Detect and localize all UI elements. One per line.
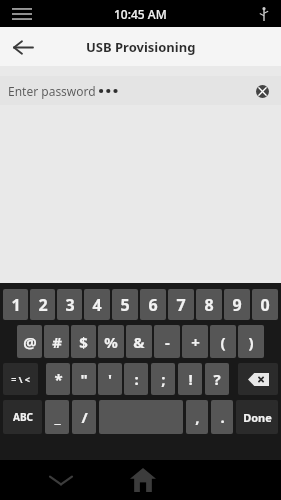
staticText: 7	[176, 294, 186, 316]
staticText: &	[133, 332, 145, 352]
button[interactable]: )	[238, 325, 264, 358]
button[interactable]: +	[182, 325, 208, 358]
staticText: $	[79, 332, 88, 352]
staticText: )	[248, 332, 254, 352]
staticText: !	[188, 369, 193, 389]
staticText: 8	[204, 294, 214, 316]
staticText: ,	[195, 407, 200, 427]
button[interactable]: 8	[196, 289, 222, 320]
button[interactable]: Hide keyboard	[45, 464, 77, 496]
staticText: ;	[161, 369, 166, 389]
staticText: @	[23, 332, 37, 352]
staticText: USB Provisioning	[86, 38, 196, 56]
staticText: 1	[11, 294, 21, 316]
staticText: ABC	[13, 410, 33, 424]
button[interactable]: 0	[252, 289, 278, 320]
button[interactable]: Enter password	[0, 76, 281, 105]
staticText: 4	[92, 294, 102, 316]
staticText: "	[80, 369, 88, 389]
staticText: Done	[243, 410, 272, 425]
button[interactable]: "	[72, 363, 96, 395]
button[interactable]: (	[210, 325, 236, 358]
button[interactable]: '	[98, 363, 122, 395]
staticText: 5	[120, 294, 130, 316]
button[interactable]: 7	[168, 289, 194, 320]
button[interactable]: Home	[125, 462, 161, 498]
button[interactable]: @	[17, 325, 42, 358]
button[interactable]: 2	[30, 289, 55, 320]
button[interactable]: Backspace	[238, 363, 278, 395]
staticText: :	[134, 369, 139, 389]
button[interactable]: %	[98, 325, 124, 358]
staticText: (	[220, 332, 226, 352]
button[interactable]: 5	[112, 289, 138, 320]
button[interactable]: _	[45, 400, 69, 434]
button[interactable]: ?	[205, 363, 229, 395]
staticText: _	[54, 407, 61, 427]
button[interactable]: -	[154, 325, 180, 358]
button[interactable]: $	[71, 325, 96, 358]
staticText: %	[104, 332, 118, 352]
button[interactable]: :	[124, 363, 148, 395]
button[interactable]: Done	[236, 400, 278, 434]
staticText: Enter password	[8, 83, 96, 99]
button[interactable]: 1	[3, 289, 28, 320]
button[interactable]: ,	[186, 400, 208, 434]
staticText: 0	[260, 294, 270, 316]
staticText: *	[54, 369, 63, 389]
other: Backspace	[238, 363, 278, 395]
button[interactable]: ;	[151, 363, 175, 395]
button[interactable]: Menu	[8, 0, 36, 27]
button[interactable]: /	[72, 400, 96, 434]
button[interactable]: 4	[84, 289, 110, 320]
staticText: = \ <	[11, 373, 30, 385]
staticText: 9	[232, 294, 242, 316]
button[interactable]: 3	[57, 289, 82, 320]
button[interactable]: Clear	[252, 81, 272, 101]
button[interactable]: 9	[224, 289, 250, 320]
button[interactable]: #	[44, 325, 69, 358]
button[interactable]: 6	[140, 289, 166, 320]
staticText: +	[191, 332, 200, 352]
staticText: '	[108, 369, 112, 389]
staticText: #	[52, 332, 62, 352]
staticText: -	[165, 332, 170, 352]
staticText: ?	[213, 369, 221, 389]
button[interactable]: !	[178, 363, 202, 395]
button[interactable]: ABC	[3, 400, 42, 434]
staticText: .	[220, 407, 225, 427]
button[interactable]: .	[211, 400, 233, 434]
button[interactable]: &	[126, 325, 152, 358]
staticText: 3	[65, 294, 75, 316]
button[interactable]: Back	[6, 30, 40, 64]
other: USB connected	[255, 5, 273, 23]
staticText: 2	[38, 294, 48, 316]
button[interactable]: *	[46, 363, 70, 395]
button[interactable]: = \ <	[3, 363, 38, 395]
staticText: /	[81, 407, 88, 427]
staticText: 6	[148, 294, 158, 316]
staticText: 10:45 AM	[114, 6, 167, 22]
